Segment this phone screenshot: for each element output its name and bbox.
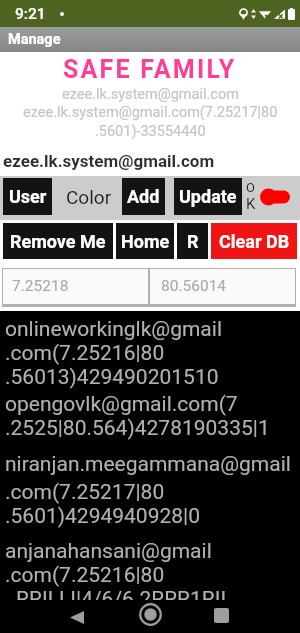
staticText: .56013)429490201510 — [5, 365, 219, 390]
button[interactable]: Home — [133, 598, 167, 631]
staticText: 9:21 — [15, 5, 46, 23]
button[interactable]: Recent apps — [204, 599, 238, 632]
button[interactable]: User — [3, 178, 52, 215]
button[interactable]: .56013)429490201510 — [5, 365, 300, 390]
staticText: ezee.lk.system@gmail.com — [62, 86, 239, 103]
staticText: 80.56014 — [161, 277, 227, 295]
button[interactable]: .com(7.25216|80 — [5, 341, 300, 366]
staticText: .com(7.25216|80 — [5, 563, 165, 588]
button[interactable]: .2525|80.564)4278190335|1 — [5, 416, 300, 441]
staticText: .2525|80.564)4278190335|1 — [5, 416, 270, 441]
button[interactable]: opengovlk@gmail.com(7 — [5, 392, 300, 417]
staticText: Clear DB — [219, 231, 290, 252]
staticText: anjanahansani@gmail — [5, 539, 212, 564]
button[interactable]: OK toggle — [256, 178, 294, 215]
button[interactable]: Color — [56, 178, 122, 215]
staticText: R — [187, 231, 199, 252]
staticText: ezee.lk.system@gmail.com — [3, 151, 215, 171]
staticText: ..RRILLI|4/6/6.2RRR1RII — [5, 587, 227, 612]
button[interactable]: Home — [116, 223, 174, 259]
button[interactable]: niranjan.meegammana@gmail — [5, 452, 300, 477]
staticText: SAFE FAMILY — [63, 55, 237, 81]
button[interactable]: .com(7.25216|80 — [5, 563, 300, 588]
staticText: Update — [179, 186, 237, 207]
staticText: niranjan.meegammana@gmail — [5, 452, 291, 477]
staticText: User — [9, 186, 47, 207]
staticText: .com(7.25216|80 — [5, 341, 165, 366]
staticText: ezee.lk.system@gmail.com(7.25217|80 — [23, 104, 278, 121]
button[interactable]: Add — [122, 178, 165, 215]
staticText: onlineworkinglk@gmail — [5, 317, 222, 342]
button[interactable]: 80.56014 — [150, 269, 295, 304]
staticText: Home — [121, 231, 170, 252]
button[interactable]: .com(7.25217|80 — [5, 480, 300, 505]
button[interactable]: R — [177, 223, 208, 259]
staticText: Remove Me — [10, 231, 106, 252]
staticText: .5601)-33554440 — [95, 123, 206, 140]
button[interactable]: onlineworkinglk@gmail — [5, 317, 300, 342]
button[interactable]: Back — [60, 601, 94, 633]
button[interactable]: anjanahansani@gmail — [5, 539, 300, 564]
button[interactable]: Update — [174, 178, 242, 215]
staticText: opengovlk@gmail.com(7 — [5, 392, 238, 417]
staticText: .com(7.25217|80 — [5, 480, 165, 505]
staticText: 7.25218 — [12, 277, 69, 295]
button[interactable]: 7.25218 — [3, 269, 148, 304]
button[interactable]: Remove Me — [3, 223, 113, 259]
staticText: .5601)4294940928|0 — [5, 504, 201, 529]
staticText: Manage — [8, 31, 61, 48]
button[interactable]: ..RRILLI|4/6/6.2RRR1RII — [5, 587, 300, 612]
button[interactable]: Clear DB — [211, 223, 297, 259]
staticText: O — [246, 180, 255, 195]
staticText: K — [246, 195, 256, 213]
staticText: Color — [66, 186, 112, 208]
button[interactable]: .5601)4294940928|0 — [5, 504, 300, 529]
staticText: Add — [127, 186, 160, 207]
